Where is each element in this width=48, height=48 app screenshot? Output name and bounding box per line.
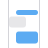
button[interactable]: Received message [9, 16, 26, 27]
button[interactable]: Sent message [16, 10, 38, 15]
button[interactable]: Sent message [16, 31, 38, 43]
